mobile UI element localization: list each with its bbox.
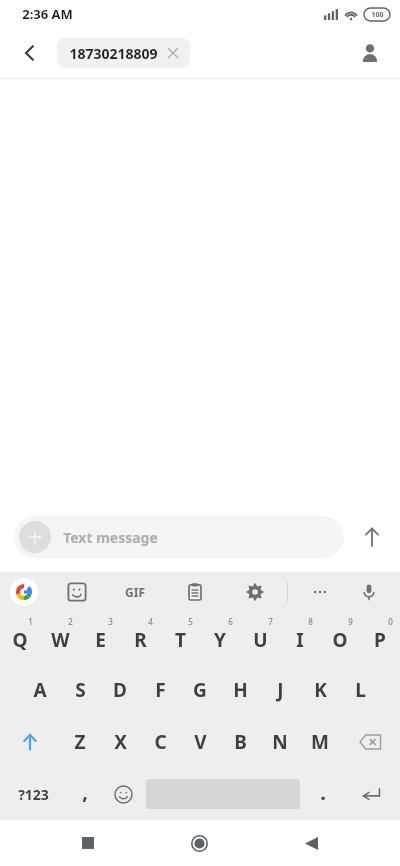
button[interactable]: Attach bbox=[19, 521, 51, 553]
button[interactable]: Emoji bbox=[104, 768, 142, 820]
staticText: 5 bbox=[188, 616, 193, 627]
staticText: U bbox=[253, 627, 268, 653]
button[interactable]: Period bbox=[304, 768, 342, 820]
staticText: Text message bbox=[63, 528, 158, 547]
staticText: H bbox=[233, 677, 248, 703]
staticText: 3 bbox=[108, 616, 113, 627]
button[interactable]: GIF bbox=[118, 575, 152, 609]
button[interactable]: I bbox=[280, 612, 320, 664]
staticText: Q bbox=[12, 627, 28, 653]
staticText: A bbox=[33, 677, 47, 703]
staticText: N bbox=[272, 729, 288, 755]
button[interactable]: ?123 bbox=[0, 768, 66, 820]
button[interactable]: Back bbox=[10, 33, 50, 73]
staticText: 7 bbox=[268, 616, 273, 627]
button[interactable]: S bbox=[60, 664, 100, 716]
button[interactable]: J bbox=[260, 664, 300, 716]
staticText: I bbox=[296, 627, 304, 653]
button[interactable]: V bbox=[180, 716, 220, 768]
staticText: J bbox=[277, 677, 284, 703]
button[interactable]: O bbox=[320, 612, 360, 664]
button[interactable]: N bbox=[260, 716, 300, 768]
button[interactable]: D bbox=[100, 664, 140, 716]
staticText: P bbox=[374, 627, 386, 653]
staticText: R bbox=[134, 627, 147, 653]
button[interactable]: R bbox=[120, 612, 160, 664]
button[interactable]: Settings bbox=[238, 575, 272, 609]
button[interactable]: Recents bbox=[65, 820, 111, 866]
button[interactable]: Google search bbox=[10, 578, 38, 606]
button[interactable]: Attach bbox=[14, 516, 344, 558]
button[interactable]: Home bbox=[176, 820, 222, 866]
staticText: Y bbox=[214, 627, 226, 653]
staticText: C bbox=[154, 729, 167, 755]
staticText: 1 bbox=[28, 616, 33, 627]
staticText: 9 bbox=[348, 616, 353, 627]
staticText: D bbox=[113, 677, 127, 703]
staticText: V bbox=[194, 729, 207, 755]
button[interactable]: U bbox=[240, 612, 280, 664]
button[interactable]: X bbox=[100, 716, 140, 768]
button[interactable]: H bbox=[220, 664, 260, 716]
staticText: F bbox=[155, 677, 166, 703]
staticText: 2 bbox=[68, 616, 73, 627]
button[interactable]: Voice input bbox=[352, 575, 386, 609]
staticText: 0 bbox=[388, 616, 393, 627]
button[interactable]: A bbox=[20, 664, 60, 716]
button[interactable]: P bbox=[360, 612, 400, 664]
staticText: O bbox=[332, 627, 348, 653]
staticText: S bbox=[75, 677, 86, 703]
staticText: M bbox=[311, 729, 329, 755]
staticText: 18730218809 bbox=[69, 44, 158, 63]
button[interactable]: L bbox=[340, 664, 380, 716]
staticText: G bbox=[193, 677, 207, 703]
staticText: E bbox=[95, 627, 106, 653]
button[interactable]: T bbox=[160, 612, 200, 664]
staticText: 100 bbox=[371, 10, 384, 20]
button[interactable]: G bbox=[180, 664, 220, 716]
button[interactable]: Shift bbox=[0, 716, 60, 768]
staticText: ?123 bbox=[18, 785, 49, 804]
staticText: 2:36 AM bbox=[22, 5, 73, 23]
staticText: . bbox=[320, 779, 326, 806]
staticText: GIF bbox=[125, 584, 145, 600]
staticText: W bbox=[51, 627, 70, 653]
button[interactable]: E bbox=[80, 612, 120, 664]
staticText: 6 bbox=[228, 616, 233, 627]
button[interactable]: More options bbox=[303, 575, 337, 609]
staticText: 4 bbox=[148, 616, 153, 627]
button[interactable]: Contact details bbox=[350, 33, 390, 73]
button[interactable]: Back bbox=[288, 820, 334, 866]
button[interactable]: Send bbox=[344, 512, 400, 562]
staticText: 8 bbox=[308, 616, 313, 627]
button[interactable]: Backspace bbox=[340, 716, 400, 768]
button[interactable]: W bbox=[40, 612, 80, 664]
button[interactable]: Clipboard bbox=[178, 575, 212, 609]
button[interactable]: Z bbox=[60, 716, 100, 768]
staticText: B bbox=[234, 729, 247, 755]
button[interactable]: B bbox=[220, 716, 260, 768]
staticText: L bbox=[355, 677, 366, 703]
button[interactable]: F bbox=[140, 664, 180, 716]
button[interactable]: Q bbox=[0, 612, 40, 664]
staticText: X bbox=[114, 729, 127, 755]
staticText: , bbox=[82, 778, 88, 805]
button[interactable]: K bbox=[300, 664, 340, 716]
button[interactable]: Comma bbox=[66, 768, 104, 820]
button[interactable]: Y bbox=[200, 612, 240, 664]
staticText: T bbox=[175, 627, 186, 653]
button[interactable]: C bbox=[140, 716, 180, 768]
staticText: Z bbox=[74, 729, 86, 755]
staticText: K bbox=[314, 677, 327, 703]
button[interactable]: Stickers bbox=[60, 575, 94, 609]
button[interactable]: 18730218809 bbox=[57, 38, 190, 68]
button[interactable]: M bbox=[300, 716, 340, 768]
button[interactable]: Enter bbox=[342, 768, 400, 820]
